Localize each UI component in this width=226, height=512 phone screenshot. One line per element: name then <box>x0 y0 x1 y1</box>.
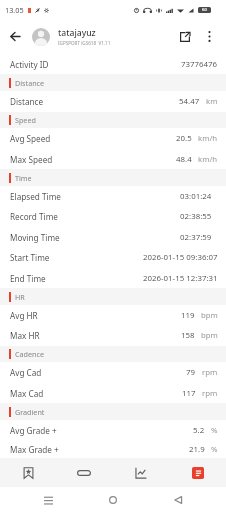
staticText: Gradient <box>15 407 45 417</box>
staticText: 02:37:59 <box>180 232 212 243</box>
staticText: 117 <box>182 388 196 399</box>
staticText: 02:38:55 <box>180 211 212 222</box>
button[interactable]: Avg HR <box>0 305 226 325</box>
button[interactable]: Recent apps <box>37 489 59 511</box>
button[interactable]: Moving Time <box>0 227 226 247</box>
staticText: 48.4 <box>176 154 192 165</box>
staticText: 20.5 <box>176 133 192 144</box>
button[interactable]: Max Cad <box>0 383 226 403</box>
staticText: 79 <box>186 367 196 378</box>
staticText: bpm <box>201 310 218 321</box>
staticText: HR <box>15 292 25 302</box>
staticText: Max Grade + <box>10 444 59 455</box>
staticText: Avg Speed <box>10 133 51 144</box>
staticText: km <box>206 96 218 107</box>
staticText: Activity ID <box>10 59 49 70</box>
staticText: Distance <box>15 78 45 88</box>
staticText: Elapsed Time <box>10 191 61 202</box>
staticText: 158 <box>181 330 195 341</box>
button[interactable]: Statistics <box>130 462 152 484</box>
staticText: 60 <box>202 7 207 13</box>
button[interactable]: More options <box>200 19 218 54</box>
staticText: Cadence <box>15 349 44 359</box>
staticText: 2026-01-15 09:36:07 <box>143 252 218 263</box>
button[interactable]: Activity ID <box>0 54 226 74</box>
button[interactable]: Distance <box>0 91 226 112</box>
button[interactable]: Back <box>167 489 189 511</box>
button[interactable]: Avg Grade + <box>0 420 226 440</box>
staticText: 54.47 <box>179 96 200 107</box>
staticText: 2026-01-15 12:37:31 <box>143 273 218 284</box>
button[interactable]: Share <box>174 19 195 54</box>
staticText: km/h <box>198 133 218 144</box>
staticText: Time <box>15 173 32 183</box>
button[interactable]: Max Grade + <box>0 440 226 458</box>
staticText: 73776476 <box>181 59 218 70</box>
staticText: rpm <box>202 367 218 378</box>
staticText: Start Time <box>10 252 50 263</box>
staticText: 5.2 <box>193 425 205 436</box>
staticText: Moving Time <box>10 232 60 243</box>
button[interactable]: Home <box>102 489 124 511</box>
staticText: Record Time <box>10 211 58 222</box>
staticText: End Time <box>10 273 46 284</box>
staticText: Max Cad <box>10 388 44 399</box>
button[interactable]: Details <box>192 467 204 479</box>
staticText: tatajayuz <box>58 27 96 39</box>
button[interactable]: Track <box>73 462 95 484</box>
staticText: Speed <box>15 115 36 125</box>
staticText: Max HR <box>10 330 40 341</box>
button[interactable]: Bookmarks <box>17 462 39 484</box>
staticText: Avg HR <box>10 310 38 321</box>
staticText: rpm <box>202 388 218 399</box>
button[interactable]: Avg Cad <box>0 362 226 383</box>
staticText: % <box>211 425 218 436</box>
button[interactable]: Elapsed Time <box>0 186 226 206</box>
staticText: 21.9 <box>189 444 205 455</box>
staticText: % <box>211 444 218 455</box>
button[interactable]: Max HR <box>0 325 226 346</box>
staticText: Avg Grade + <box>10 425 57 436</box>
staticText: 13.05 <box>5 5 24 15</box>
button[interactable]: Avg Speed <box>0 128 226 149</box>
staticText: IGPSPORT iGS618 V1.11 <box>58 40 111 46</box>
staticText: Avg Cad <box>10 367 42 378</box>
button[interactable]: Record Time <box>0 206 226 227</box>
button[interactable]: Max Speed <box>0 149 226 169</box>
staticText: km/h <box>198 154 218 165</box>
staticText: Max Speed <box>10 154 53 165</box>
staticText: 03:01:24 <box>180 191 212 202</box>
staticText: bpm <box>201 330 218 341</box>
button[interactable]: Start Time <box>0 247 226 268</box>
staticText: 119 <box>181 310 195 321</box>
button[interactable]: Back <box>0 19 30 54</box>
button[interactable]: End Time <box>0 268 226 288</box>
staticText: Distance <box>10 96 44 107</box>
